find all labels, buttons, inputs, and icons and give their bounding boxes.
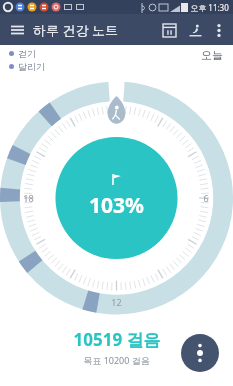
button[interactable]: More actions	[181, 334, 219, 372]
staticText: 하루 건강 노트	[33, 21, 118, 39]
button[interactable]: Location	[182, 17, 208, 43]
button[interactable]: Menu	[6, 19, 28, 41]
button[interactable]: 달리기	[9, 61, 45, 72]
staticText: 12	[111, 296, 122, 308]
button[interactable]: 오늘	[201, 48, 223, 62]
staticText: 달리기	[18, 61, 45, 72]
staticText: 10519 걸음	[73, 328, 161, 351]
button[interactable]: More options	[208, 19, 230, 41]
staticText: 목표 10200 걸음	[83, 354, 150, 366]
staticText: 오늘	[201, 48, 223, 62]
staticText: 18	[23, 192, 34, 204]
button[interactable]: 걷기	[9, 48, 36, 59]
staticText: 오후 11:30	[190, 2, 229, 13]
button[interactable]: 6	[0, 78, 233, 328]
staticText: 6	[203, 192, 209, 204]
staticText: 걷기	[18, 48, 36, 59]
staticText: 103%	[89, 191, 144, 220]
button[interactable]: Calendar	[156, 17, 182, 43]
